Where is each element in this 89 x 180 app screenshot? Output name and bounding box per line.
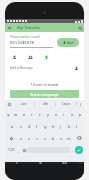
button[interactable]: n xyxy=(57,132,65,144)
button[interactable]: o xyxy=(68,108,76,120)
staticText: o xyxy=(71,112,74,117)
staticText: My Transfer xyxy=(17,25,41,31)
staticText: k xyxy=(68,124,71,129)
button[interactable]: p xyxy=(76,108,84,120)
button[interactable]: Add xyxy=(57,38,79,47)
staticText: Les xyxy=(21,102,26,106)
button[interactable]: k xyxy=(65,120,73,132)
staticText: b xyxy=(52,136,55,141)
button[interactable]: u xyxy=(52,108,60,120)
staticText: l xyxy=(76,124,78,129)
button[interactable]: Select a language xyxy=(10,90,79,98)
button[interactable]: y xyxy=(44,108,52,120)
staticText: d xyxy=(28,124,31,129)
button[interactable]: Emoji xyxy=(5,100,13,108)
staticText: u xyxy=(55,112,58,117)
button[interactable]: Add files xyxy=(42,53,50,61)
button[interactable]: ?123 xyxy=(6,145,16,155)
staticText: z xyxy=(20,136,22,141)
button[interactable]: r xyxy=(28,108,36,120)
staticText: afh xyxy=(43,102,48,106)
button[interactable]: Leurs xyxy=(56,100,76,108)
button[interactable]: Voice input xyxy=(21,145,27,155)
button[interactable]: q xyxy=(5,108,12,120)
button[interactable]: z xyxy=(17,132,25,144)
button[interactable]: Recents xyxy=(52,162,76,164)
button[interactable]: g xyxy=(41,120,49,132)
button[interactable]: e xyxy=(20,108,28,120)
staticText: r xyxy=(31,112,33,117)
button[interactable]: Back xyxy=(5,23,14,32)
staticText: t xyxy=(39,112,41,117)
button[interactable]: l xyxy=(73,120,81,132)
staticText: Add a Message xyxy=(10,66,33,70)
staticText: a xyxy=(11,124,14,129)
staticText: ?123 xyxy=(8,148,15,152)
staticText: h xyxy=(52,124,55,129)
button[interactable]: s xyxy=(17,120,25,132)
staticText: Add xyxy=(67,40,74,45)
button[interactable]: Backspace xyxy=(73,132,84,144)
staticText: Phone number / email xyxy=(10,35,40,39)
staticText: c xyxy=(36,136,38,141)
staticText: . xyxy=(72,148,74,153)
staticText: m xyxy=(67,136,71,141)
button[interactable]: Hide keyboard xyxy=(76,162,84,164)
staticText: 12 sent to emails xyxy=(10,82,79,87)
staticText: v xyxy=(44,136,47,141)
button[interactable]: Add a Message xyxy=(10,65,79,71)
staticText: 0612345678 xyxy=(10,40,34,46)
button[interactable]: , xyxy=(16,145,21,155)
button[interactable]: h xyxy=(49,120,57,132)
staticText: e xyxy=(23,112,26,117)
button[interactable]: . xyxy=(70,145,75,155)
button[interactable]: m xyxy=(65,132,73,144)
staticText: Leurs xyxy=(62,102,71,106)
button[interactable]: Shift xyxy=(5,132,17,144)
button[interactable]: a xyxy=(8,120,17,132)
staticText: , xyxy=(18,148,20,153)
staticText: q xyxy=(7,112,10,117)
staticText: Select a language xyxy=(30,92,59,97)
button[interactable]: c xyxy=(33,132,41,144)
staticText: g xyxy=(44,124,47,129)
button[interactable]: t xyxy=(36,108,44,120)
button[interactable]: i xyxy=(60,108,68,120)
button[interactable]: Contacts xyxy=(10,53,18,61)
staticText: f xyxy=(36,124,38,129)
button[interactable]: Back xyxy=(5,162,28,164)
button[interactable]: Groups xyxy=(26,53,34,61)
staticText: n xyxy=(60,136,63,141)
staticText: w xyxy=(14,112,18,117)
staticText: s xyxy=(20,124,22,129)
button[interactable]: x xyxy=(25,132,33,144)
staticText: j xyxy=(60,124,62,129)
staticText: x xyxy=(28,136,31,141)
button[interactable]: w xyxy=(12,108,20,120)
button[interactable]: Send xyxy=(75,146,83,154)
button[interactable]: v xyxy=(41,132,49,144)
button[interactable]: Attach xyxy=(73,65,79,71)
staticText: y xyxy=(47,112,50,117)
button[interactable]: j xyxy=(57,120,65,132)
button[interactable]: afh xyxy=(35,100,55,108)
button[interactable]: f xyxy=(33,120,41,132)
button[interactable]: Home xyxy=(28,162,52,164)
staticText: i xyxy=(63,112,65,117)
button[interactable]: d xyxy=(25,120,33,132)
button[interactable]: Les xyxy=(13,100,34,108)
button[interactable]: More options xyxy=(75,23,84,32)
button[interactable]: Phone number / email xyxy=(10,35,53,48)
button[interactable]: b xyxy=(49,132,57,144)
button[interactable]: More suggestions xyxy=(77,100,84,108)
staticText: p xyxy=(79,112,82,117)
